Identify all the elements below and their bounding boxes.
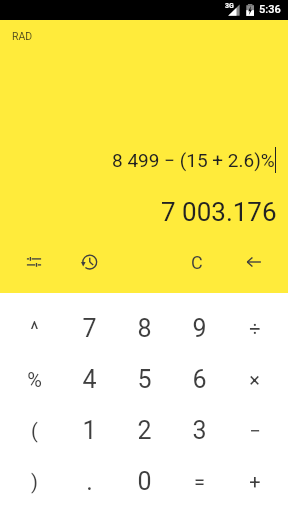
button[interactable]: Backspace [240, 248, 268, 276]
staticText: 8 [137, 314, 152, 343]
staticText: = [194, 470, 205, 493]
staticText: + [249, 470, 261, 493]
button[interactable]: × [227, 354, 282, 405]
staticText: ) [31, 470, 38, 493]
staticText: ^ [30, 317, 39, 340]
button[interactable]: 8 [117, 302, 172, 354]
staticText: 1 [82, 416, 97, 445]
button[interactable]: + [227, 456, 282, 507]
button[interactable]: Settings [20, 248, 48, 276]
button[interactable]: 2 [117, 405, 172, 456]
staticText: 5 [137, 365, 152, 394]
staticText: . [86, 467, 93, 496]
button[interactable]: ÷ [227, 302, 282, 354]
staticText: 3 [192, 416, 207, 445]
staticText: 6 [192, 365, 207, 394]
staticText: 2 [137, 416, 152, 445]
button[interactable]: 7 [62, 302, 117, 354]
staticText: × [249, 368, 260, 391]
staticText: 0 [137, 467, 152, 496]
button[interactable]: 4 [62, 354, 117, 405]
button[interactable]: 0 [117, 456, 172, 507]
staticText: 5:36 [259, 3, 281, 16]
staticText: 3G [225, 2, 234, 10]
staticText: 4 [82, 365, 97, 394]
button[interactable]: 5 [117, 354, 172, 405]
button[interactable]: . [62, 456, 117, 507]
button[interactable]: % [6, 354, 62, 405]
button[interactable]: ( [6, 405, 62, 456]
button[interactable]: 1 [62, 405, 117, 456]
staticText: 7 [82, 314, 97, 343]
staticText: % [27, 368, 42, 391]
staticText: C [191, 252, 203, 273]
staticText: 9 [192, 314, 207, 343]
button[interactable]: 3 [172, 405, 227, 456]
staticText: 8 499 − (15 + 2.6)% [112, 149, 275, 171]
staticText: 7 003.176 [161, 197, 277, 227]
button[interactable]: 6 [172, 354, 227, 405]
staticText: ÷ [249, 317, 261, 340]
staticText: − [249, 419, 261, 442]
button[interactable]: − [227, 405, 282, 456]
button[interactable]: History [76, 248, 104, 276]
button[interactable]: 9 [172, 302, 227, 354]
button[interactable]: ^ [6, 302, 62, 354]
staticText: ( [31, 419, 38, 442]
button[interactable]: RAD [12, 30, 33, 42]
button[interactable]: ) [6, 456, 62, 507]
button[interactable]: Clear [183, 248, 211, 276]
button[interactable]: = [172, 456, 227, 507]
